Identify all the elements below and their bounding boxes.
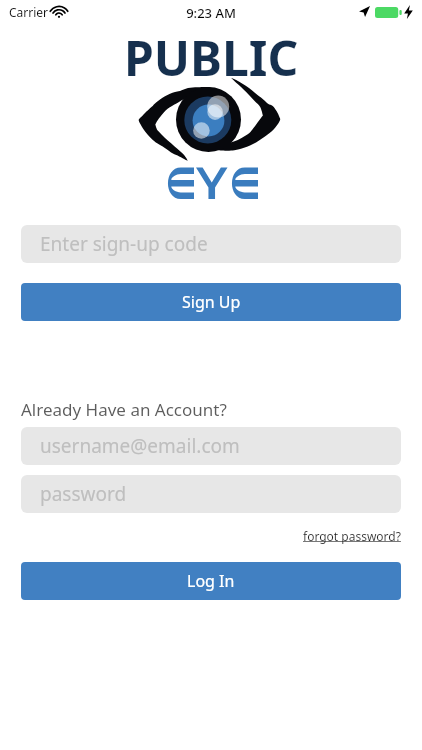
button[interactable]: Sign Up [21,283,401,321]
staticText: forgot password? [303,528,401,544]
button[interactable]: Enter sign-up code [21,225,401,263]
staticText: Sign Up [182,291,241,313]
button[interactable]: Log In [21,562,401,600]
staticText: username@email.com [40,433,240,459]
staticText: password [40,481,127,507]
staticText: PUBLIC [124,25,299,90]
button[interactable]: username@email.com [21,427,401,465]
button[interactable]: forgot password? [303,528,401,544]
staticText: Enter sign-up code [40,231,208,257]
staticText: 9:23 AM [0,4,422,22]
button[interactable]: password [21,475,401,513]
staticText: Log In [187,570,235,592]
staticText: Already Have an Account? [21,398,227,421]
staticText: Carrier [9,4,49,20]
